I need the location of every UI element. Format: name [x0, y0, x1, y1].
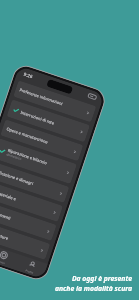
staticText: Profilo: [25, 268, 34, 275]
staticText: Note e attrezzature: [0, 225, 10, 241]
staticText: 9:26: [23, 71, 33, 79]
button[interactable]: Preferenze informazioni: [13, 80, 96, 122]
staticText: Servizi: [0, 259, 5, 265]
button[interactable]: Servizi: [0, 245, 19, 270]
staticText: domestico: [6, 152, 22, 161]
staticText: Interruzioni di rete: [20, 110, 55, 126]
button[interactable]: Medicazione e dimagri: [0, 161, 69, 203]
staticText: Medicazione e dimagri: [0, 168, 34, 186]
staticText: Riparazione e bilancio: [7, 148, 48, 166]
button[interactable]: Note e attrezzature: [0, 218, 50, 260]
button[interactable]: Opere e manutenzione: [0, 119, 83, 161]
button[interactable]: Dati e documenti: [0, 199, 57, 241]
button[interactable]: Profilo: [14, 254, 48, 279]
staticText: Da oggi è presente: [71, 274, 132, 283]
staticText: Liste materiale e: [0, 187, 17, 201]
staticText: Dati e documenti: [0, 206, 12, 221]
button[interactable]: Liste materiale e: [0, 180, 63, 222]
staticText: Opere e manutenzione: [6, 126, 49, 145]
button[interactable]: Interruzioni di rete: [7, 99, 90, 142]
staticText: anche la modalità scura: [54, 284, 132, 293]
staticText: Preferenze informazioni: [19, 87, 64, 107]
button[interactable]: Riparazione e bilancio: [0, 138, 77, 184]
